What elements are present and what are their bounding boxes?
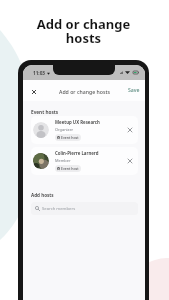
button[interactable]: Search members — [31, 202, 138, 215]
button[interactable]: Event host — [55, 165, 81, 172]
staticText: Organizer — [55, 127, 74, 132]
staticText: Meetup UX Research — [55, 119, 100, 125]
staticText: Add or change hosts — [59, 88, 110, 95]
staticText: Add hosts — [31, 192, 54, 198]
staticText: Search members — [42, 206, 76, 212]
staticText: Member — [55, 158, 71, 163]
button[interactable]: Save — [126, 84, 142, 95]
staticText: Add or change hosts — [0, 15, 168, 47]
staticText: 11:03 — [33, 70, 46, 76]
button[interactable]: Meetup UX Research — [31, 116, 138, 144]
staticText: Event host — [61, 166, 79, 171]
button[interactable]: Remove Meetup UX Research — [125, 125, 135, 135]
staticText: Colin-Pierre Larnerd — [55, 150, 99, 156]
button[interactable]: Colin-Pierre Larnerd — [31, 147, 138, 175]
staticText: Event host — [61, 135, 79, 140]
button[interactable]: Remove Colin-Pierre Larnerd — [125, 156, 135, 166]
staticText: Event hosts — [31, 109, 59, 115]
button[interactable]: Close — [28, 86, 39, 97]
button[interactable]: Event host — [55, 134, 81, 141]
staticText: Save — [128, 86, 140, 93]
